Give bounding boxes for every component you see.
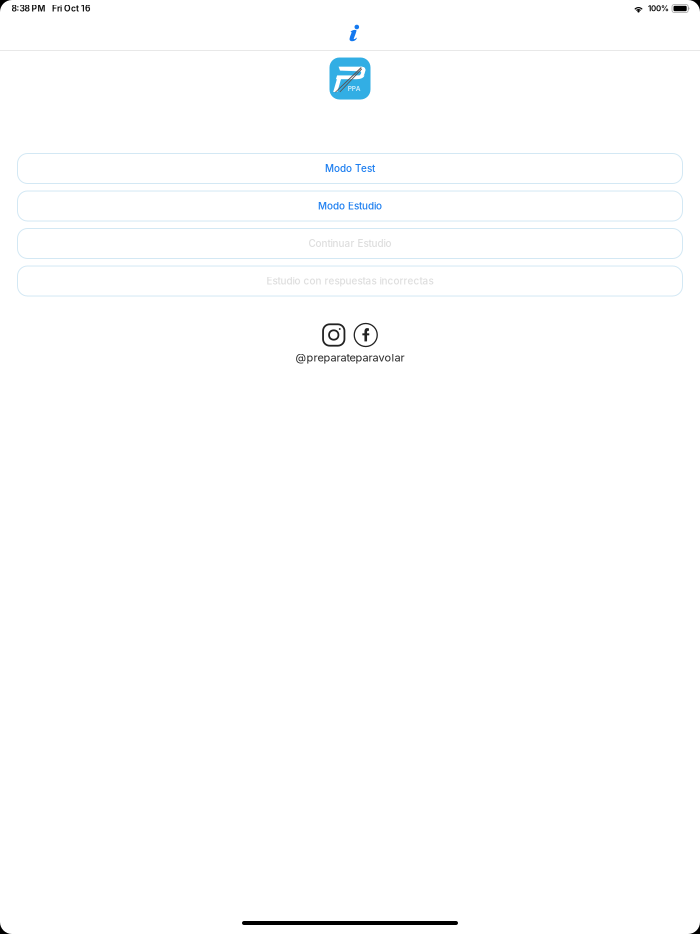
staticText: 100% <box>648 4 669 13</box>
button[interactable]: Continuar Estudio <box>17 228 682 258</box>
staticText: PPA <box>348 85 361 93</box>
button[interactable]: Info <box>333 17 367 50</box>
staticText: Estudio con respuestas incorrectas <box>266 275 433 287</box>
staticText: Modo Test <box>325 162 375 174</box>
staticText: Fri Oct 16 <box>52 3 90 14</box>
button[interactable]: Facebook <box>354 323 378 347</box>
staticText: Modo Estudio <box>318 200 382 212</box>
button[interactable]: Modo Estudio <box>17 191 682 221</box>
button[interactable]: Modo Test <box>17 153 682 183</box>
staticText: Continuar Estudio <box>308 237 391 249</box>
staticText: 8:38 PM <box>11 3 45 14</box>
button[interactable]: Instagram <box>322 323 345 346</box>
staticText: @preparateparavolar <box>295 351 404 364</box>
button[interactable]: Estudio con respuestas incorrectas <box>17 266 682 296</box>
